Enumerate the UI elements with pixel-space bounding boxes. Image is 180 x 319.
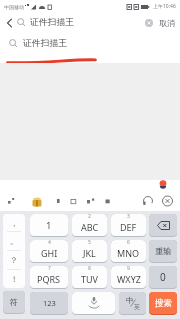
staticText: 上午10:46	[153, 3, 176, 10]
button[interactable]: 7	[30, 266, 68, 288]
button[interactable]: ！	[3, 270, 25, 288]
staticText: GHI	[41, 247, 58, 259]
button[interactable]: 6	[111, 240, 146, 262]
button[interactable]: 符	[3, 291, 25, 313]
button[interactable]: 0	[149, 266, 177, 288]
button[interactable]	[72, 292, 115, 314]
staticText: ABC	[81, 221, 99, 233]
button[interactable]: 3	[111, 214, 146, 236]
staticText: 0	[160, 270, 166, 284]
button[interactable]: ，	[3, 214, 25, 231]
staticText: WXYZ	[117, 273, 141, 285]
button[interactable]: 4	[30, 240, 68, 262]
button[interactable]: 123	[30, 292, 68, 314]
staticText: 中国移动	[4, 4, 24, 10]
staticText: 取消	[159, 18, 175, 28]
staticText: 重输	[155, 246, 172, 256]
staticText: TUV	[81, 273, 98, 285]
staticText: MNO	[117, 247, 140, 259]
staticText: 5	[88, 240, 91, 246]
staticText: 7	[48, 266, 51, 272]
staticText: ！	[10, 274, 18, 284]
staticText: ？	[10, 255, 18, 265]
button[interactable]: 2	[72, 214, 107, 236]
button[interactable]: 5	[72, 240, 107, 262]
staticText: 英	[134, 303, 140, 311]
button[interactable]: 取消	[159, 18, 175, 28]
button[interactable]: 重输	[149, 240, 177, 262]
staticText: 8	[88, 266, 91, 272]
button[interactable]: 8	[72, 266, 107, 288]
staticText: JKL	[83, 247, 96, 259]
staticText: 证件扫描王	[30, 17, 74, 28]
button[interactable]: 1	[30, 214, 68, 236]
staticText: 123	[43, 298, 56, 308]
staticText: 3	[127, 214, 130, 220]
staticText: 搜索	[155, 298, 172, 309]
staticText: 中	[126, 296, 134, 305]
button[interactable]: ？	[3, 251, 25, 269]
staticText: 。	[10, 236, 18, 246]
button[interactable]: 中	[119, 292, 146, 314]
staticText: DEF	[120, 221, 137, 233]
button[interactable]	[149, 214, 177, 236]
staticText: 符	[10, 297, 18, 307]
staticText: PQRS	[37, 273, 61, 285]
staticText: 4	[48, 240, 51, 246]
button[interactable]: 证件扫描王	[0, 32, 180, 63]
button[interactable]	[144, 18, 154, 28]
button[interactable]	[6, 18, 13, 28]
button[interactable]: 9	[111, 266, 146, 288]
staticText: 2	[88, 214, 91, 220]
staticText: ，	[10, 218, 18, 228]
staticText: 9	[127, 266, 130, 272]
button[interactable]: 搜索	[149, 292, 177, 314]
staticText: 6	[127, 240, 130, 246]
button[interactable]: 。	[3, 232, 25, 250]
staticText: 证件扫描王	[23, 38, 67, 49]
staticText: 1	[46, 219, 52, 232]
